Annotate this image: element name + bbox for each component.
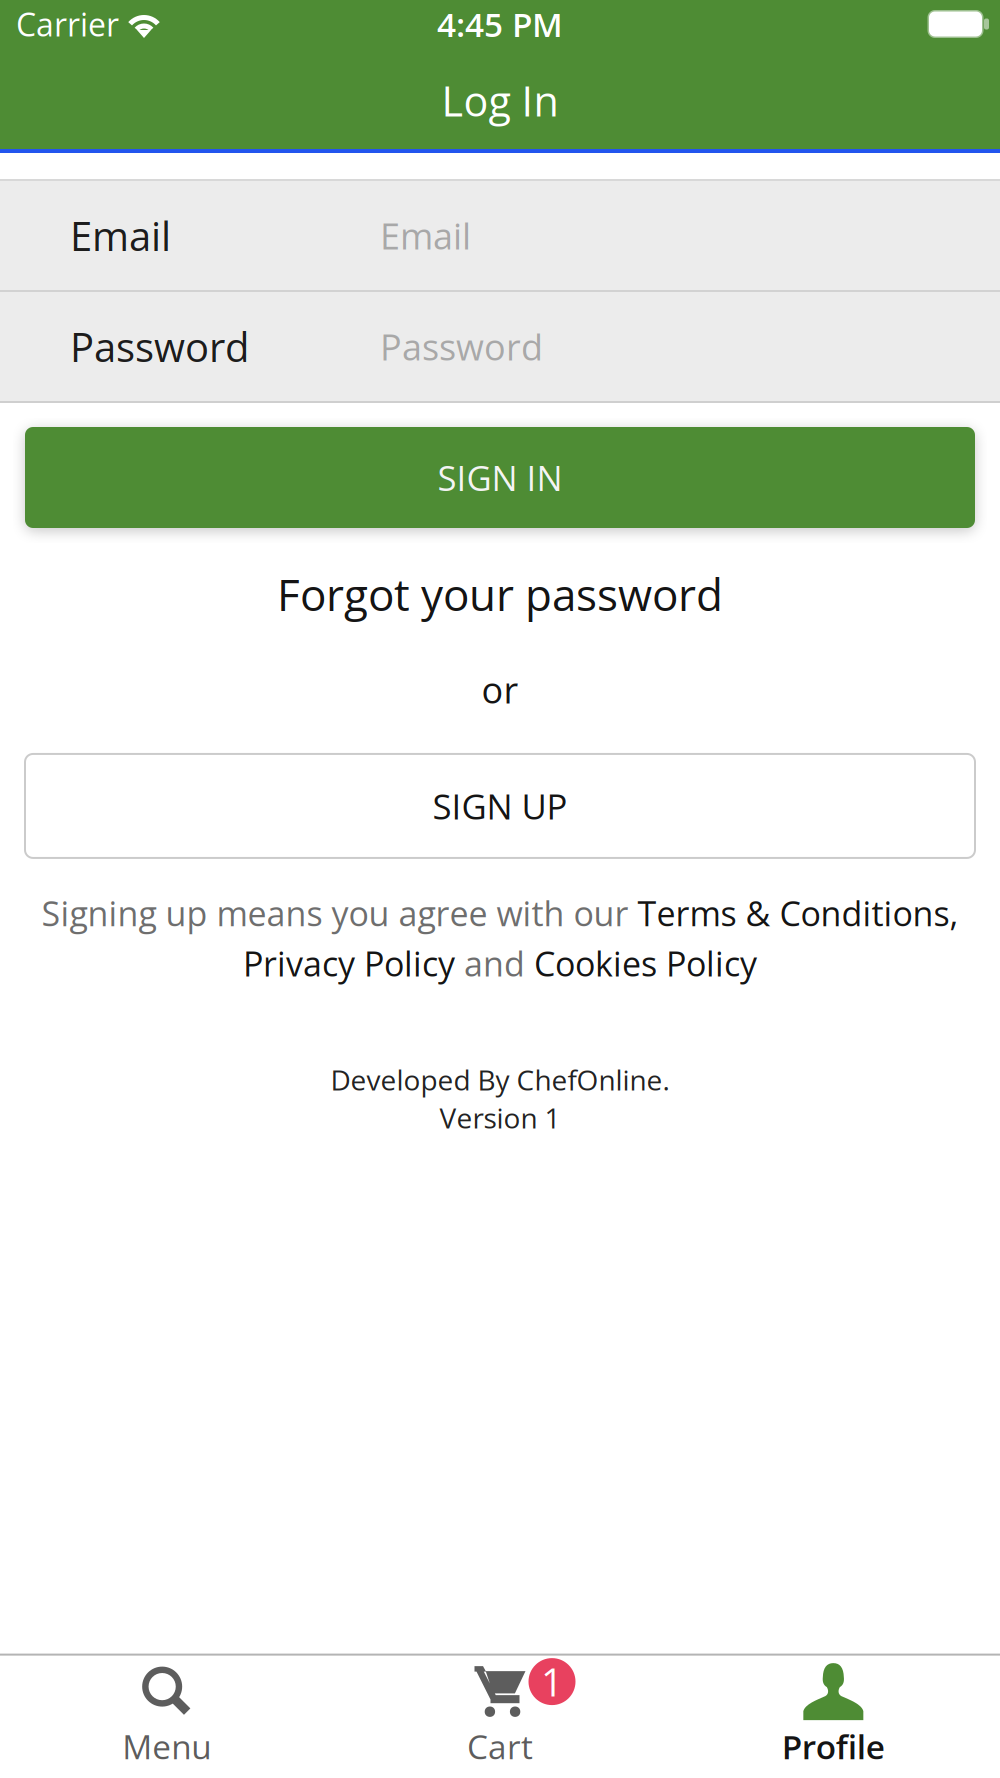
button[interactable]: 1 <box>333 1660 667 1769</box>
button[interactable]: Privacy Policy <box>243 940 455 986</box>
button[interactable]: Menu <box>0 1660 333 1769</box>
staticText: and <box>455 940 534 986</box>
button[interactable]: Profile <box>667 1660 1000 1769</box>
staticText: Terms & Conditions, <box>637 890 958 936</box>
button[interactable]: Terms & Conditions, <box>637 890 958 936</box>
button[interactable]: Cookies Policy <box>534 940 757 986</box>
staticText: SIGN IN <box>437 454 562 501</box>
staticText: Signing up means you agree with our <box>41 890 637 936</box>
staticText: Password <box>380 322 543 371</box>
staticText: 4:45 PM <box>437 1 563 47</box>
staticText: SIGN UP <box>432 782 567 829</box>
staticText: Cookies Policy <box>534 940 757 986</box>
staticText: Carrier <box>16 2 119 46</box>
staticText: Version 1 <box>439 1099 560 1137</box>
staticText: Email <box>380 211 471 260</box>
button[interactable]: SIGN UP <box>25 754 975 858</box>
staticText: Privacy Policy <box>243 940 455 986</box>
staticText: 1 <box>541 1655 563 1708</box>
staticText: Password <box>70 319 249 374</box>
staticText: Developed By ChefOnline. <box>330 1060 669 1099</box>
staticText: Menu <box>122 1724 211 1769</box>
staticText: Profile <box>782 1724 885 1769</box>
staticText: Email <box>70 208 171 263</box>
staticText: Cart <box>467 1724 533 1769</box>
button[interactable]: SIGN IN <box>25 427 975 528</box>
staticText: or <box>481 665 518 714</box>
staticText: Log In <box>441 72 558 129</box>
staticText: Forgot your password <box>277 564 723 624</box>
